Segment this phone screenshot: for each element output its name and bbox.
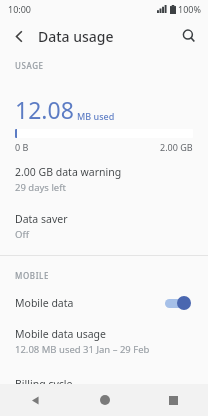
staticText: Billing cycle	[15, 377, 73, 384]
staticText: Data saver	[15, 212, 68, 226]
staticText: USAGE	[15, 60, 44, 71]
staticText: 12.08 MB used 31 Jan – 29 Feb	[15, 343, 150, 356]
staticText: MB used	[77, 110, 115, 122]
staticText: Data usage	[38, 27, 114, 46]
staticText: 100%	[178, 3, 201, 15]
staticText: Mobile data usage	[15, 327, 106, 341]
staticText: 10:00	[8, 3, 32, 15]
button[interactable]: Recent apps	[139, 384, 208, 416]
button[interactable]: Home	[70, 384, 139, 416]
staticText: 2.00 GB data warning	[15, 165, 122, 179]
button[interactable]: Mobile data	[0, 286, 208, 320]
button[interactable]: Search	[174, 21, 204, 51]
staticText: Off	[15, 228, 29, 241]
staticText: 0 B	[15, 141, 29, 153]
staticText: Mobile data	[15, 296, 74, 310]
button[interactable]: Back	[0, 384, 70, 416]
button[interactable]: Mobile data usage	[0, 320, 208, 363]
staticText: MOBILE	[15, 270, 50, 281]
button[interactable]: Back	[4, 21, 34, 51]
staticText: 29 days left	[15, 181, 66, 194]
button[interactable]: Billing cycle	[0, 363, 208, 384]
button[interactable]: Data saver	[0, 204, 208, 249]
staticText: 12.08	[15, 94, 74, 125]
staticText: 2.00 GB	[160, 141, 193, 153]
